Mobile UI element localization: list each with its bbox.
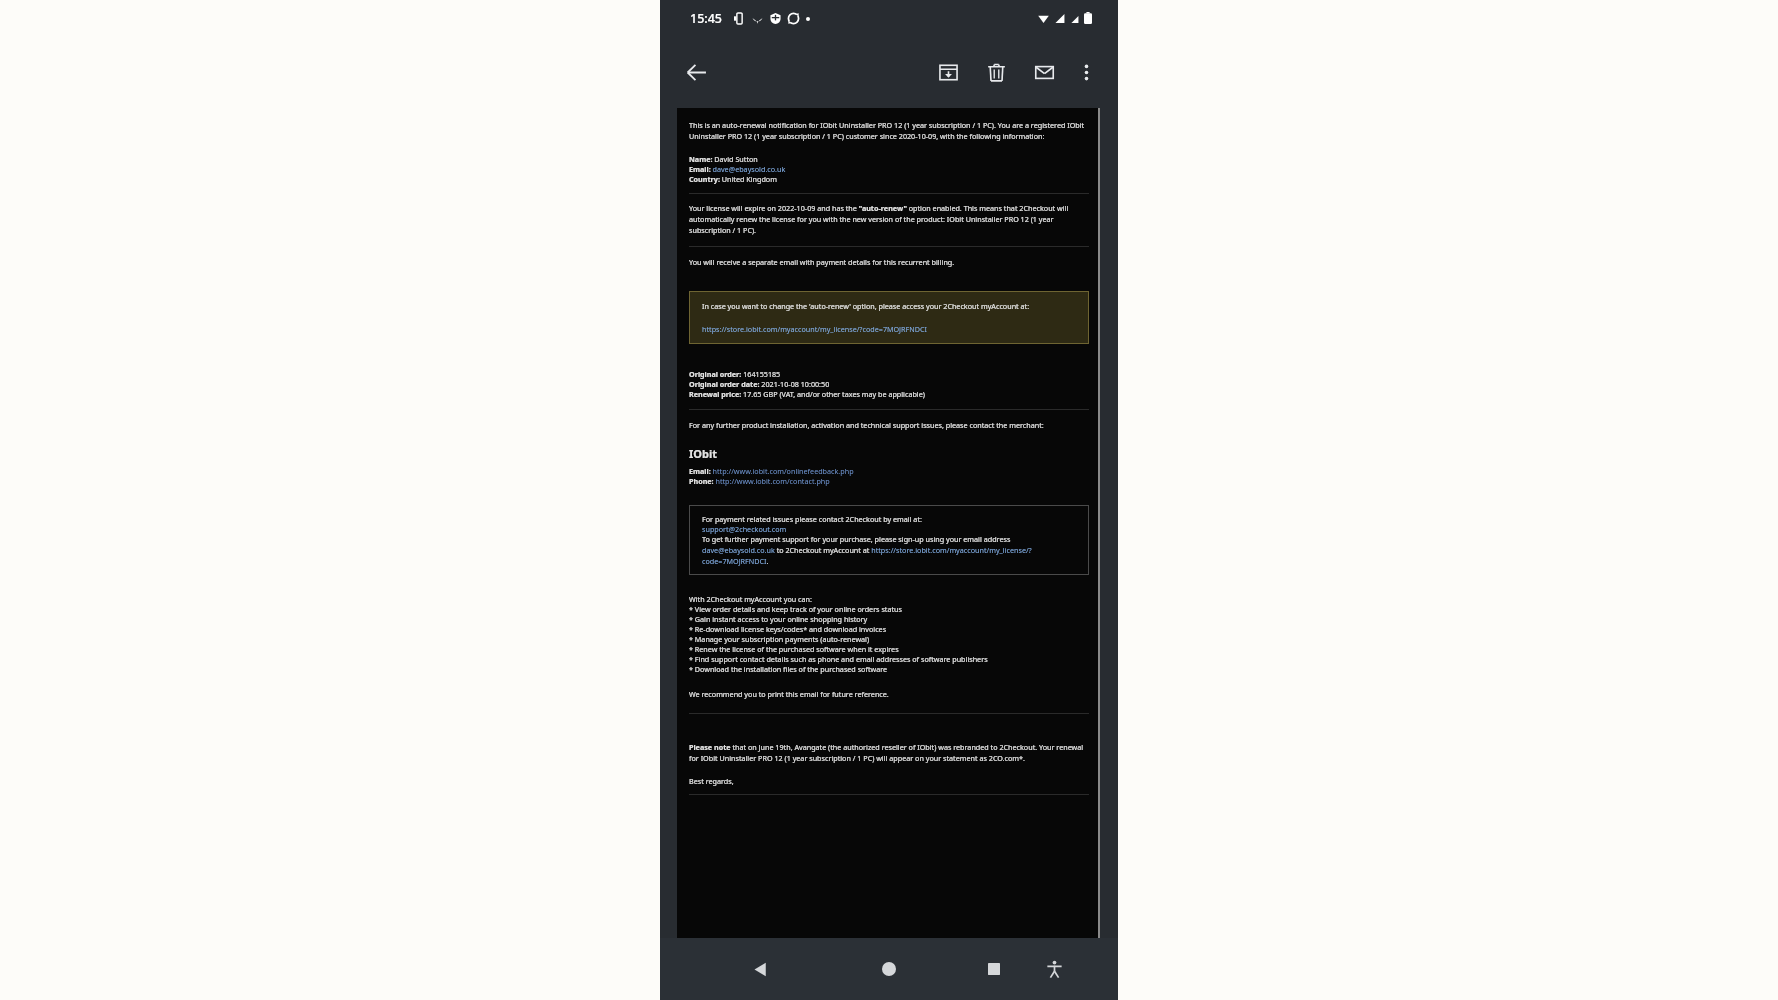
staticText: We recommend you to print this email for… bbox=[689, 689, 889, 699]
button[interactable]: Archive bbox=[928, 52, 968, 92]
button[interactable]: Home bbox=[867, 947, 911, 991]
staticText: * Manage your subscription payments (aut… bbox=[689, 634, 870, 644]
staticText: Email: http://www.iobit.com/onlinefeedba… bbox=[689, 466, 854, 476]
staticText: For payment related issues please contac… bbox=[702, 514, 922, 524]
staticText: For any further product installation, ac… bbox=[689, 420, 1044, 430]
staticText: Email: dave@ebaysold.co.uk bbox=[689, 164, 786, 174]
button[interactable]: Back bbox=[738, 947, 782, 991]
button[interactable]: Recent apps bbox=[972, 947, 1016, 991]
staticText: This is an auto-renewal notification for… bbox=[689, 120, 1089, 141]
staticText: With 2Checkout myAccount you can: bbox=[689, 594, 812, 604]
button[interactable]: Delete bbox=[976, 52, 1016, 92]
staticText: Name: David Sutton bbox=[689, 154, 758, 164]
staticText: https://store.iobit.com/myaccount/my_lic… bbox=[702, 324, 927, 334]
staticText: Original order date: 2021-10-08 10:00:50 bbox=[689, 379, 830, 389]
staticText: Best regards, bbox=[689, 776, 734, 786]
staticText: * View order details and keep track of y… bbox=[689, 604, 902, 614]
staticText: Renewal price: 17.65 GBP (VAT, and/or ot… bbox=[689, 389, 925, 399]
staticText: In case you want to change the 'auto-ren… bbox=[702, 301, 1030, 311]
staticText: To get further payment support for your … bbox=[702, 534, 1076, 566]
button[interactable]: Accessibility bbox=[1032, 947, 1076, 991]
button[interactable]: Mark as unread bbox=[1024, 52, 1064, 92]
staticText: Phone: http://www.iobit.com/contact.php bbox=[689, 476, 830, 486]
staticText: Your license will expire on 2022-10-09 a… bbox=[689, 203, 1089, 235]
staticText: 15:45 bbox=[690, 10, 723, 27]
staticText: * Gain instant access to your online sho… bbox=[689, 614, 868, 624]
staticText: support@2checkout.com bbox=[702, 524, 787, 534]
staticText: Please note that on June 19th, Avangate … bbox=[689, 742, 1089, 763]
staticText: * Find support contact details such as p… bbox=[689, 654, 988, 664]
staticText: * Re-download license keys/codes* and do… bbox=[689, 624, 887, 634]
staticText: Original order: 164155185 bbox=[689, 369, 781, 379]
staticText: * Download the installation files of the… bbox=[689, 664, 888, 674]
button[interactable]: Back bbox=[674, 50, 718, 94]
staticText: * Renew the license of the purchased sof… bbox=[689, 644, 899, 654]
staticText: IObit bbox=[689, 446, 717, 461]
staticText: You will receive a separate email with p… bbox=[689, 257, 955, 267]
button[interactable]: More options bbox=[1066, 52, 1106, 92]
staticText: Country: United Kingdom bbox=[689, 174, 777, 184]
